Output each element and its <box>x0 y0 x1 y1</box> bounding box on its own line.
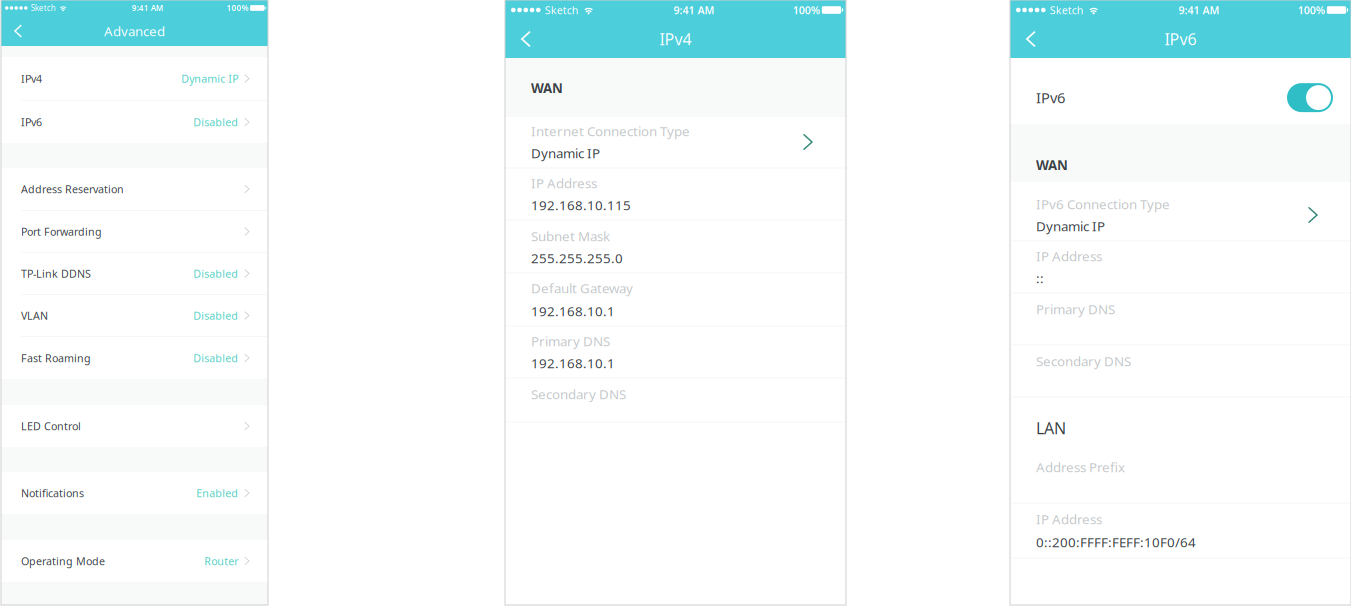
staticText: 9:41 AM <box>673 3 714 17</box>
button[interactable]: Address Reservation <box>1 168 268 210</box>
staticText: Advanced <box>104 22 165 40</box>
staticText: Router <box>204 554 238 568</box>
staticText: Secondary DNS <box>1036 352 1131 370</box>
staticText: :: <box>1036 269 1044 287</box>
staticText: Disabled <box>193 266 238 281</box>
staticText: 255.255.255.0 <box>531 249 623 267</box>
staticText: IPv4 <box>21 71 42 86</box>
button[interactable]: TP-Link DDNS <box>1 253 268 294</box>
button[interactable]: IPv4 <box>1 57 268 100</box>
staticText: IPv6 <box>1164 28 1196 50</box>
staticText: 100% <box>1298 3 1325 17</box>
staticText: WAN <box>531 79 563 97</box>
staticText: 192.168.10.115 <box>531 196 631 214</box>
staticText: Fast Roaming <box>21 351 91 365</box>
button[interactable]: Notifications <box>1 472 268 514</box>
staticText: IPv6 <box>21 115 42 129</box>
staticText: IP Address <box>531 174 597 192</box>
staticText: Primary DNS <box>1036 300 1115 318</box>
staticText: Enabled <box>196 486 238 500</box>
staticText: IPv6 <box>1036 88 1065 107</box>
staticText: Sketch <box>1050 3 1084 17</box>
staticText: Disabled <box>193 308 238 323</box>
staticText: Primary DNS <box>531 332 610 350</box>
staticText: 100% <box>793 3 820 17</box>
staticText: Operating Mode <box>21 554 105 568</box>
staticText: Default Gateway <box>531 279 633 297</box>
staticText: Disabled <box>193 115 238 129</box>
button[interactable]: LED Control <box>1 405 268 447</box>
staticText: 192.168.10.1 <box>531 302 615 320</box>
staticText: Disabled <box>193 351 238 365</box>
staticText: Port Forwarding <box>21 224 102 239</box>
staticText: IP Address <box>1036 247 1102 265</box>
staticText: IP Address <box>1036 510 1102 528</box>
button[interactable]: Fast Roaming <box>1 337 268 379</box>
staticText: Dynamic IP <box>181 71 238 86</box>
staticText: 192.168.10.1 <box>531 354 615 372</box>
staticText: Dynamic IP <box>1036 217 1105 235</box>
staticText: Notifications <box>21 486 84 500</box>
button[interactable]: IPv6 <box>1 101 268 143</box>
staticText: Internet Connection Type <box>531 122 690 140</box>
button[interactable]: Back <box>505 20 547 58</box>
staticText: Secondary DNS <box>531 385 626 403</box>
staticText: IPv6 Connection Type <box>1036 195 1170 213</box>
button[interactable]: IPv6 <box>1010 64 1351 131</box>
button[interactable]: Operating Mode <box>1 540 268 582</box>
button[interactable]: Internet Connection Type <box>505 116 846 168</box>
staticText: LED Control <box>21 419 81 433</box>
staticText: TP-Link DDNS <box>21 266 91 281</box>
button[interactable]: Back <box>1 16 35 46</box>
staticText: 9:41 AM <box>132 3 163 13</box>
staticText: 100% <box>227 3 249 13</box>
staticText: VLAN <box>21 308 48 323</box>
staticText: Sketch <box>545 3 579 17</box>
button[interactable]: Back <box>1010 20 1052 58</box>
staticText: Address Reservation <box>21 182 124 196</box>
staticText: 9:41 AM <box>1178 3 1219 17</box>
staticText: Address Prefix <box>1036 458 1125 476</box>
staticText: Subnet Mask <box>531 227 610 245</box>
staticText: IPv4 <box>659 28 691 50</box>
button[interactable]: Port Forwarding <box>1 211 268 252</box>
staticText: Dynamic IP <box>531 144 600 162</box>
button[interactable]: VLAN <box>1 295 268 336</box>
staticText: 0::200:FFFF:FEFF:10F0/64 <box>1036 533 1196 551</box>
button[interactable]: IPv6 Connection Type <box>1010 189 1351 241</box>
staticText: Sketch <box>31 3 56 13</box>
staticText: LAN <box>1036 417 1066 439</box>
staticText: WAN <box>1036 156 1068 174</box>
